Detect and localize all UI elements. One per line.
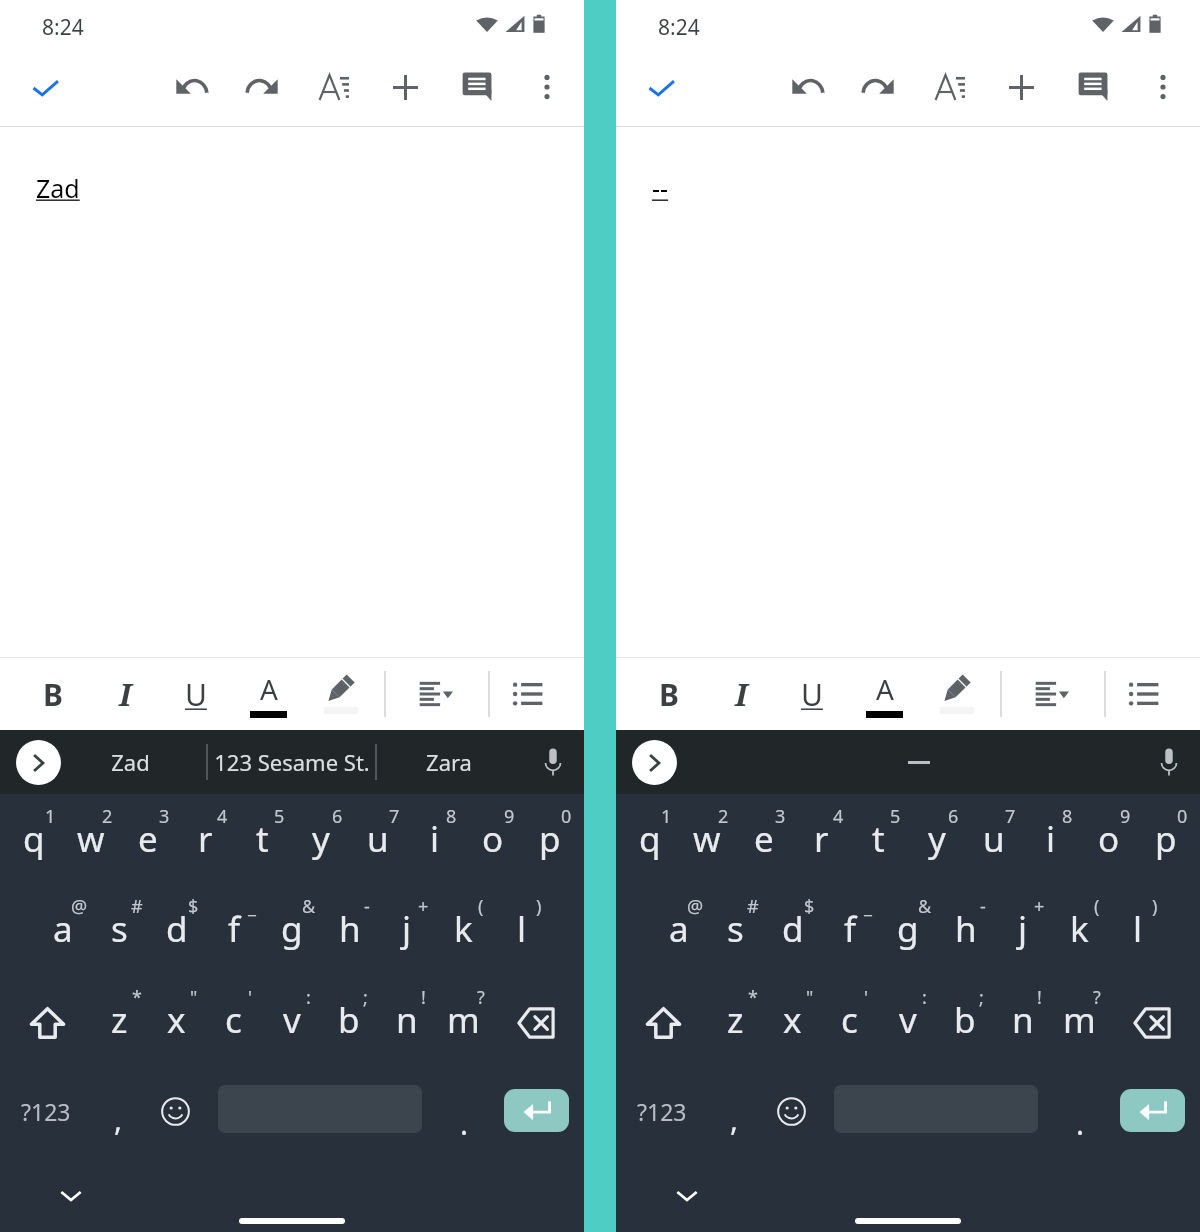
- button[interactable]: 0: [521, 811, 578, 873]
- button[interactable]: -: [321, 901, 378, 963]
- button[interactable]: Comments: [450, 59, 504, 113]
- button[interactable]: Voice input: [533, 742, 573, 782]
- button[interactable]: Backspace: [492, 992, 580, 1054]
- button[interactable]: (: [435, 901, 492, 963]
- button[interactable]: +: [378, 901, 435, 963]
- button[interactable]: ": [148, 992, 205, 1054]
- button[interactable]: $: [764, 901, 821, 963]
- button[interactable]: Underline: [786, 668, 838, 720]
- button[interactable]: Shift: [619, 992, 707, 1054]
- button[interactable]: ?: [435, 992, 492, 1054]
- button[interactable]: Redo: [851, 59, 905, 113]
- button[interactable]: 6: [908, 811, 965, 873]
- button[interactable]: @: [34, 901, 91, 963]
- button[interactable]: *: [707, 992, 764, 1054]
- button[interactable]: List: [502, 668, 554, 720]
- button[interactable]: More options: [520, 60, 574, 114]
- button[interactable]: ): [493, 901, 550, 963]
- button[interactable]: Period: [1056, 1095, 1104, 1151]
- button[interactable]: 123 Sesame St.: [208, 730, 376, 794]
- button[interactable]: -: [937, 901, 994, 963]
- button[interactable]: ': [205, 992, 262, 1054]
- button[interactable]: Comma: [94, 1091, 142, 1147]
- button[interactable]: #: [707, 901, 764, 963]
- button[interactable]: More options: [1136, 60, 1190, 114]
- button[interactable]: Zad: [70, 730, 190, 794]
- button[interactable]: Voice input: [1149, 742, 1189, 782]
- button[interactable]: Undo: [780, 59, 834, 113]
- button[interactable]: 2: [678, 811, 735, 873]
- button[interactable]: _: [206, 901, 263, 963]
- button[interactable]: Text color: [242, 668, 294, 720]
- button[interactable]: Symbols: [616, 1080, 708, 1142]
- button[interactable]: Done: [634, 61, 688, 115]
- button[interactable]: Hide keyboard: [49, 1174, 93, 1218]
- button[interactable]: Underline: [170, 668, 222, 720]
- button[interactable]: _: [822, 901, 879, 963]
- button[interactable]: 9: [1080, 811, 1137, 873]
- button[interactable]: 8: [406, 811, 463, 873]
- button[interactable]: List: [1118, 668, 1170, 720]
- button[interactable]: 2: [62, 811, 119, 873]
- button[interactable]: Emoji: [763, 1083, 819, 1139]
- button[interactable]: &: [263, 901, 320, 963]
- button[interactable]: +: [994, 901, 1051, 963]
- button[interactable]: Enter: [1120, 1089, 1185, 1132]
- button[interactable]: Text color: [858, 668, 910, 720]
- button[interactable]: Comma: [710, 1091, 758, 1147]
- button[interactable]: 7: [349, 811, 406, 873]
- button[interactable]: Alignment: [1026, 668, 1078, 720]
- button[interactable]: Highlight: [315, 668, 367, 720]
- button[interactable]: Undo: [164, 59, 218, 113]
- button[interactable]: Expand toolbar: [632, 740, 677, 785]
- button[interactable]: Insert: [994, 60, 1048, 114]
- button[interactable]: :: [263, 992, 320, 1054]
- button[interactable]: 1: [621, 811, 678, 873]
- button[interactable]: @: [650, 901, 707, 963]
- button[interactable]: Zara: [389, 730, 509, 794]
- button[interactable]: Text formatting: [307, 60, 361, 114]
- button[interactable]: Italic: [99, 668, 151, 720]
- button[interactable]: $: [148, 901, 205, 963]
- button[interactable]: Hide keyboard: [665, 1174, 709, 1218]
- button[interactable]: Expand toolbar: [16, 740, 61, 785]
- button[interactable]: ': [821, 992, 878, 1054]
- button[interactable]: 3: [119, 811, 176, 873]
- button[interactable]: Done: [18, 61, 72, 115]
- button[interactable]: 4: [177, 811, 234, 873]
- button[interactable]: Shift: [3, 992, 91, 1054]
- button[interactable]: 3: [735, 811, 792, 873]
- button[interactable]: Bold: [27, 668, 79, 720]
- button[interactable]: Bold: [643, 668, 695, 720]
- button[interactable]: &: [879, 901, 936, 963]
- button[interactable]: Text formatting: [923, 60, 977, 114]
- button[interactable]: Insert: [378, 60, 432, 114]
- button[interactable]: 5: [234, 811, 291, 873]
- button[interactable]: Italic: [715, 668, 767, 720]
- button[interactable]: !: [378, 992, 435, 1054]
- button[interactable]: ): [1109, 901, 1166, 963]
- button[interactable]: 5: [850, 811, 907, 873]
- button[interactable]: 8: [1022, 811, 1079, 873]
- button[interactable]: Symbols: [0, 1080, 92, 1142]
- button[interactable]: Period: [440, 1095, 488, 1151]
- button[interactable]: :: [879, 992, 936, 1054]
- button[interactable]: ;: [936, 992, 993, 1054]
- button[interactable]: !: [994, 992, 1051, 1054]
- button[interactable]: 1: [5, 811, 62, 873]
- button[interactable]: 0: [1137, 811, 1194, 873]
- button[interactable]: Comments: [1066, 59, 1120, 113]
- button[interactable]: Highlight: [931, 668, 983, 720]
- button[interactable]: ?: [1051, 992, 1108, 1054]
- button[interactable]: Emoji: [147, 1083, 203, 1139]
- button[interactable]: Backspace: [1108, 992, 1196, 1054]
- button[interactable]: ": [764, 992, 821, 1054]
- button[interactable]: (: [1051, 901, 1108, 963]
- button[interactable]: 6: [292, 811, 349, 873]
- button[interactable]: *: [91, 992, 148, 1054]
- button[interactable]: Alignment: [410, 668, 462, 720]
- button[interactable]: 4: [793, 811, 850, 873]
- button[interactable]: Enter: [504, 1089, 569, 1132]
